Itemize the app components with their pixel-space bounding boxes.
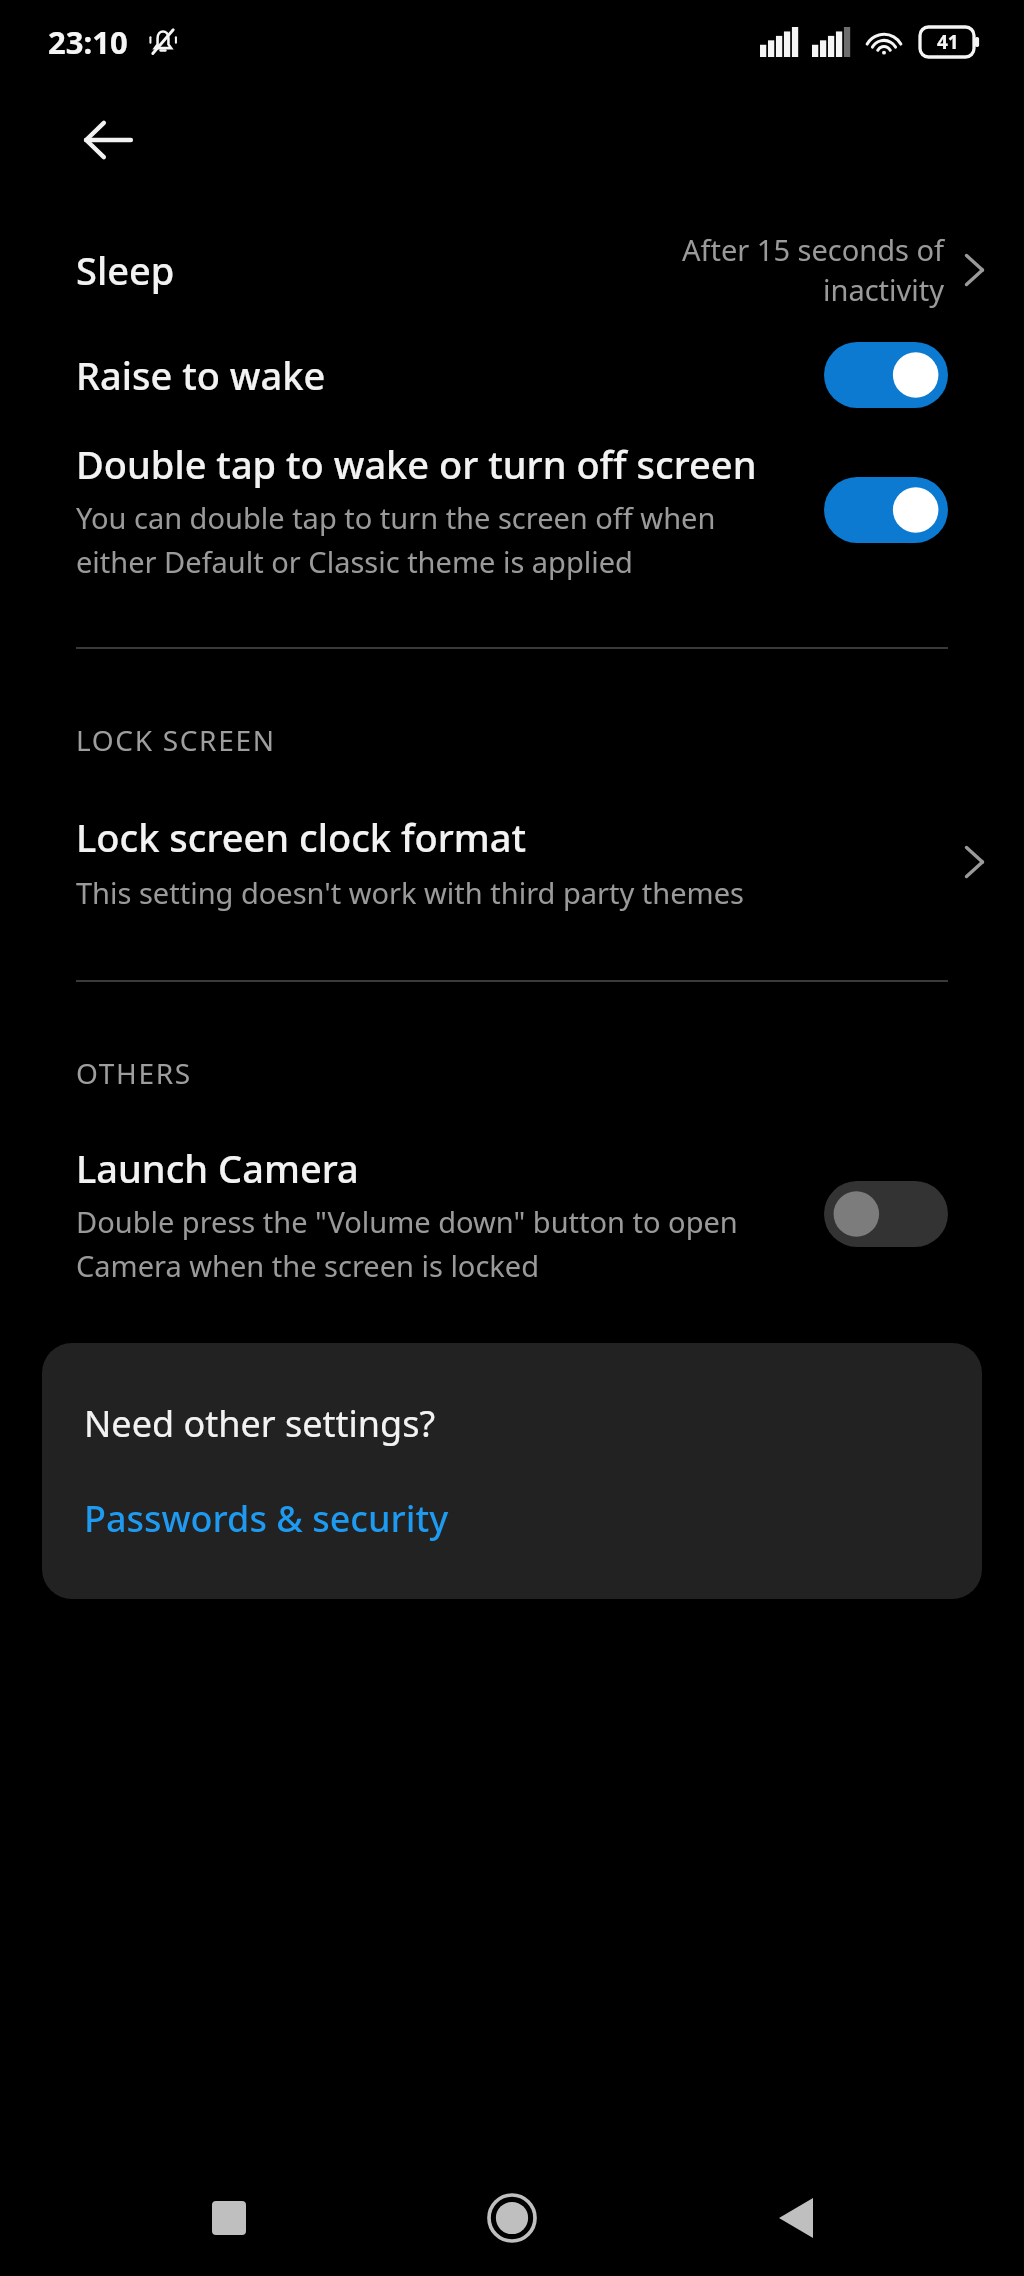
button[interactable]: On xyxy=(824,342,948,408)
button[interactable]: Back xyxy=(56,88,160,192)
staticText: 41 xyxy=(937,29,959,55)
staticText: Raise to wake xyxy=(76,349,326,401)
button[interactable]: Lock screen clock format xyxy=(0,811,1024,912)
button[interactable]: Back xyxy=(741,2163,851,2273)
button[interactable]: Off xyxy=(824,1181,948,1247)
staticText: Launch Camera xyxy=(76,1142,359,1194)
staticText: This setting doesn't work with third par… xyxy=(76,873,744,912)
staticText: OTHERS xyxy=(76,1054,192,1092)
button[interactable]: Raise to wake xyxy=(0,342,1024,408)
staticText: LOCK SCREEN xyxy=(76,721,276,759)
staticText: Double press the "Volume down" button to… xyxy=(76,1202,794,1285)
button[interactable]: Double tap to wake or turn off screen xyxy=(0,438,1024,581)
staticText: You can double tap to turn the screen of… xyxy=(76,498,794,581)
staticText: Double tap to wake or turn off screen xyxy=(76,438,757,490)
button[interactable]: On xyxy=(824,477,948,543)
button[interactable]: Home xyxy=(457,2163,567,2273)
button[interactable]: Launch Camera xyxy=(0,1142,1024,1285)
staticText: Sleep xyxy=(76,244,175,296)
staticText: Lock screen clock format xyxy=(76,811,527,863)
staticText: Need other settings? xyxy=(84,1399,436,1448)
button[interactable]: Passwords & security xyxy=(84,1494,449,1543)
staticText: Passwords & security xyxy=(84,1494,449,1543)
button[interactable]: Sleep xyxy=(0,214,1024,326)
staticText: 23:10 xyxy=(48,21,128,63)
staticText: After 15 seconds of inactivity xyxy=(614,230,944,310)
button[interactable]: Recents xyxy=(174,2163,284,2273)
